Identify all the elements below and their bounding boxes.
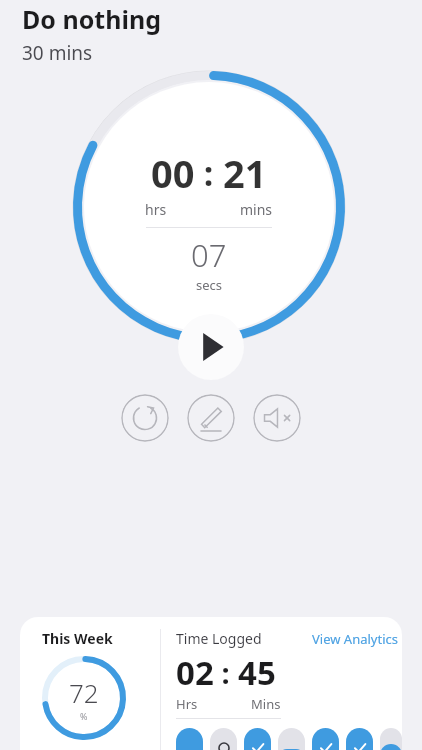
staticText: 21 bbox=[223, 147, 267, 199]
button[interactable] bbox=[176, 728, 203, 750]
staticText: secs bbox=[196, 276, 223, 294]
button[interactable]: Play bbox=[178, 314, 244, 380]
staticText: 72 bbox=[69, 675, 99, 710]
button[interactable] bbox=[312, 728, 339, 750]
button[interactable]: View Analytics bbox=[312, 630, 398, 648]
button[interactable]: This Week bbox=[20, 617, 402, 750]
staticText: 45 bbox=[238, 650, 276, 695]
staticText: View Analytics bbox=[312, 630, 398, 648]
staticText: : bbox=[195, 150, 223, 196]
staticText: 00 bbox=[151, 147, 195, 199]
button[interactable]: Mute bbox=[253, 394, 301, 442]
button[interactable]: Edit bbox=[187, 394, 235, 442]
staticText: Hrs bbox=[176, 695, 198, 713]
button[interactable]: Restart bbox=[121, 394, 169, 442]
button[interactable] bbox=[380, 728, 402, 750]
staticText: Time Logged bbox=[176, 629, 262, 648]
button[interactable] bbox=[346, 728, 373, 750]
staticText: Mins bbox=[251, 695, 281, 713]
staticText: : bbox=[214, 653, 238, 692]
staticText: Do nothing bbox=[22, 2, 161, 36]
button[interactable] bbox=[210, 728, 237, 750]
staticText: % bbox=[80, 710, 88, 722]
staticText: 02 bbox=[176, 650, 214, 695]
button[interactable] bbox=[278, 728, 305, 750]
staticText: mins bbox=[240, 200, 273, 219]
staticText: 30 mins bbox=[22, 40, 93, 66]
staticText: This Week bbox=[42, 629, 113, 648]
staticText: 07 bbox=[191, 234, 227, 276]
button[interactable] bbox=[244, 728, 271, 750]
staticText: hrs bbox=[145, 200, 167, 219]
